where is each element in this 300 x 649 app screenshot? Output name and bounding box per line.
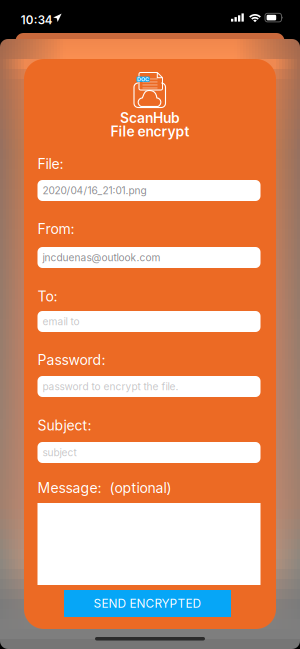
button[interactable]: password to encrypt the file. [37,376,260,397]
button[interactable]: SEND ENCRYPTED [64,590,231,617]
button[interactable]: 2020/04/16_21:01.png [37,180,260,201]
staticText: ScanHub [120,109,180,126]
staticText: SEND ENCRYPTED [93,596,201,611]
button[interactable]: subject [37,442,260,463]
button[interactable]: jncduenas@outlook.com [37,247,260,268]
staticText: From: [37,220,74,237]
staticText: To: [37,288,57,305]
staticText: subject [42,446,76,459]
staticText: email to [42,315,79,328]
staticText: 2020/04/16_21:01.png [42,184,146,197]
staticText: DOC [137,76,149,82]
staticText: 10:34 [21,13,53,27]
staticText: password to encrypt the file. [42,380,178,393]
staticText: File: [37,155,63,172]
staticText: jncduenas@outlook.com [42,251,160,264]
staticText: Message: (optional) [37,479,171,496]
staticText: File encrypt [110,123,189,140]
button[interactable]: email to [37,311,260,332]
staticText: Password: [37,351,105,368]
staticText: Subject: [37,417,91,434]
